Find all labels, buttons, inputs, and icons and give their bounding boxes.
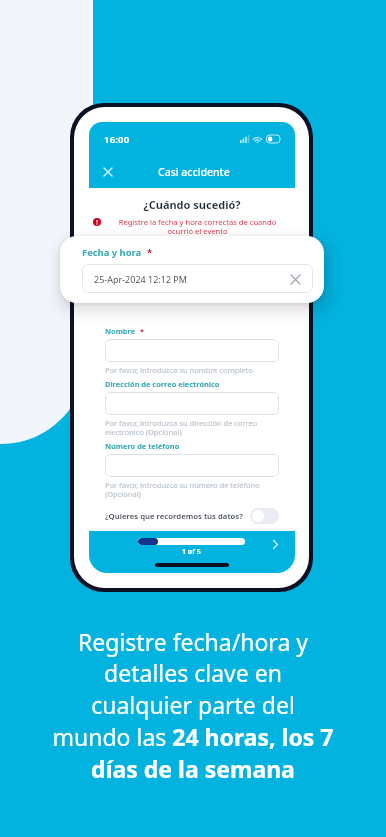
staticText: * [140, 326, 145, 336]
button[interactable] [105, 454, 279, 477]
button[interactable]: Remember my data toggle [250, 508, 279, 524]
button[interactable] [105, 392, 279, 415]
button[interactable]: 25-Apr-2024 12:12 PM [94, 264, 303, 293]
staticText: Fecha y hora [82, 246, 142, 259]
staticText: 1 of 5 [182, 547, 201, 557]
staticText: Dirección de correo electrónico [105, 379, 220, 389]
button[interactable]: Close [94, 158, 122, 186]
staticText: ¿Quieres que recordemos tus datos? [105, 511, 243, 522]
staticText: Por favor, introduzca su número de teléf… [105, 480, 279, 499]
staticText: Registre fecha/hora y detalles clave en … [0, 626, 386, 785]
staticText: * [147, 246, 153, 259]
staticText: Por favor, introduzca su nombre completo [105, 365, 279, 375]
staticText: 16:00 [104, 133, 130, 146]
button[interactable]: Next [266, 535, 284, 553]
staticText: Casi accidente [158, 165, 230, 179]
staticText: Nombre [105, 326, 136, 336]
staticText: 25-Apr-2024 12:12 PM [94, 273, 187, 285]
staticText: Registre la fecha y hora correctas de cu… [106, 217, 289, 236]
staticText: Por favor, introduzca su dirección de co… [105, 418, 279, 437]
button[interactable] [105, 339, 279, 362]
staticText: Número de teléfono [105, 441, 180, 451]
staticText: ¿Cuándo sucedió? [89, 197, 295, 212]
button[interactable]: Clear date [287, 271, 303, 287]
